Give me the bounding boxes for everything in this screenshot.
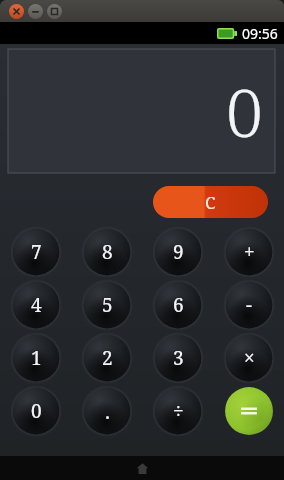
button[interactable]: C	[153, 186, 268, 218]
staticText: 09:56	[242, 24, 278, 43]
button[interactable]: 4	[10, 279, 62, 331]
button[interactable]: 9	[152, 226, 204, 278]
staticText: 4	[31, 292, 42, 318]
button[interactable]: ÷	[152, 385, 204, 437]
staticText: 1	[31, 345, 42, 371]
staticText: 6	[173, 292, 184, 318]
button[interactable]: -	[223, 279, 275, 331]
staticText: 0	[226, 66, 263, 156]
staticText: 2	[102, 345, 113, 371]
staticText: C	[205, 191, 216, 214]
button[interactable]: ×	[223, 332, 275, 384]
button[interactable]: 7	[10, 226, 62, 278]
staticText: 7	[31, 239, 42, 265]
button[interactable]: 5	[81, 279, 133, 331]
staticText: 0	[31, 398, 42, 424]
staticText: .	[105, 398, 110, 425]
button[interactable]: Maximize	[47, 4, 62, 19]
button[interactable]: Home	[131, 457, 153, 479]
staticText: 9	[173, 239, 184, 265]
other: Equals	[238, 400, 260, 422]
button[interactable]: 8	[81, 226, 133, 278]
button[interactable]: 0	[10, 385, 62, 437]
staticText: 8	[102, 239, 113, 265]
button[interactable]: +	[223, 226, 275, 278]
button[interactable]: Close	[9, 4, 24, 19]
staticText: +	[244, 239, 255, 265]
staticText: ÷	[173, 398, 184, 424]
button[interactable]: 2	[81, 332, 133, 384]
button[interactable]: 1	[10, 332, 62, 384]
button[interactable]: 3	[152, 332, 204, 384]
button[interactable]: Equals	[223, 385, 275, 437]
staticText: -	[246, 292, 252, 318]
button[interactable]: 6	[152, 279, 204, 331]
button[interactable]: .	[81, 385, 133, 437]
staticText: 5	[102, 292, 113, 318]
staticText: 3	[173, 345, 184, 371]
staticText: ×	[244, 345, 255, 371]
button[interactable]: Minimize	[28, 4, 43, 19]
